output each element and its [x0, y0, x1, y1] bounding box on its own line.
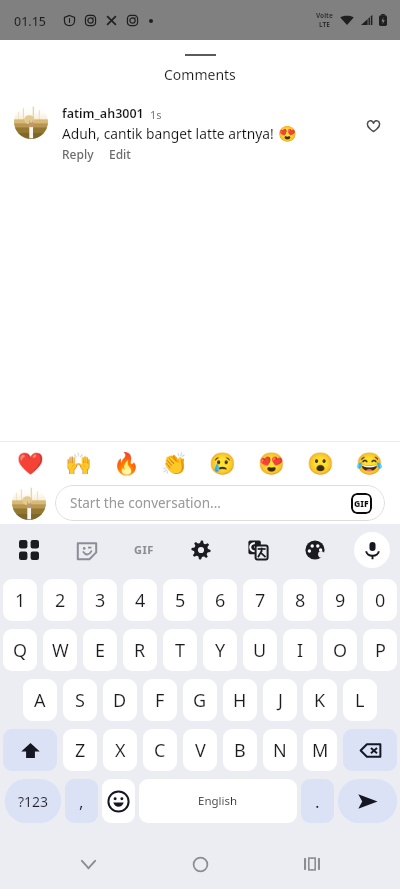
staticText: G: [193, 688, 207, 713]
staticText: Q: [13, 638, 28, 663]
button[interactable]: W: [43, 629, 77, 671]
staticText: ,: [79, 790, 84, 813]
button[interactable]: H: [223, 679, 257, 721]
button[interactable]: 2: [43, 579, 77, 621]
button[interactable]: React 😂: [345, 445, 394, 481]
staticText: Y: [215, 638, 226, 663]
button[interactable]: Voice input: [343, 524, 400, 575]
staticText: Z: [75, 738, 86, 763]
staticText: X: [115, 738, 126, 763]
staticText: M: [312, 738, 329, 763]
staticText: I: [297, 638, 304, 663]
button[interactable]: Backspace: [343, 729, 397, 771]
button[interactable]: D: [103, 679, 137, 721]
staticText: LTE: [319, 20, 330, 29]
button[interactable]: E: [83, 629, 117, 671]
button[interactable]: 6: [203, 579, 237, 621]
staticText: Aduh, cantik banget latte artnya!: [62, 124, 274, 143]
staticText: 😮: [307, 451, 334, 476]
button[interactable]: Send: [338, 779, 397, 823]
staticText: 😢: [209, 451, 236, 476]
staticText: 🔥: [113, 451, 140, 476]
staticText: W: [52, 638, 69, 663]
button[interactable]: Recent apps: [288, 840, 336, 888]
button[interactable]: GIF: [115, 524, 172, 575]
button[interactable]: M: [303, 729, 337, 771]
button[interactable]: Emoji: [102, 779, 135, 823]
button[interactable]: Q: [3, 629, 37, 671]
button[interactable]: U: [243, 629, 277, 671]
button[interactable]: React 😍: [247, 445, 296, 481]
button[interactable]: fatim_ah3001: [0, 105, 400, 162]
button[interactable]: Y: [203, 629, 237, 671]
button[interactable]: 3: [83, 579, 117, 621]
button[interactable]: 4: [123, 579, 157, 621]
button[interactable]: React 🔥: [102, 445, 150, 481]
button[interactable]: Like: [361, 114, 385, 138]
staticText: B: [234, 738, 246, 763]
button[interactable]: K: [303, 679, 337, 721]
button[interactable]: 0: [363, 579, 397, 621]
button[interactable]: GIF: [351, 493, 372, 514]
button[interactable]: Z: [63, 729, 97, 771]
staticText: GIF: [134, 542, 154, 557]
button[interactable]: 7: [243, 579, 277, 621]
staticText: 👏: [161, 451, 188, 476]
button[interactable]: R: [123, 629, 157, 671]
button[interactable]: 1: [3, 579, 37, 621]
button[interactable]: React 👏: [150, 445, 198, 481]
button[interactable]: React 😢: [198, 445, 247, 481]
button[interactable]: ,: [65, 779, 98, 823]
button[interactable]: React 🙌: [54, 445, 102, 481]
button[interactable]: Start the conversation...: [55, 485, 385, 521]
staticText: 0: [375, 588, 386, 613]
button[interactable]: N: [263, 729, 297, 771]
button[interactable]: Home: [176, 840, 224, 888]
button[interactable]: V: [183, 729, 217, 771]
button[interactable]: S: [63, 679, 97, 721]
button[interactable]: Settings: [172, 524, 229, 575]
button[interactable]: Symbols: [0, 524, 58, 575]
staticText: D: [113, 688, 127, 713]
staticText: ?123: [18, 792, 49, 811]
button[interactable]: A: [23, 679, 57, 721]
button[interactable]: I: [283, 629, 317, 671]
button[interactable]: P: [363, 629, 397, 671]
button[interactable]: J: [263, 679, 297, 721]
button[interactable]: Reply: [62, 146, 94, 162]
staticText: ❤️: [17, 451, 44, 476]
button[interactable]: Edit: [109, 146, 131, 162]
button[interactable]: L: [343, 679, 377, 721]
button[interactable]: ?123: [5, 779, 61, 823]
button[interactable]: 9: [323, 579, 357, 621]
button[interactable]: F: [143, 679, 177, 721]
staticText: English: [198, 793, 238, 809]
button[interactable]: T: [163, 629, 197, 671]
staticText: N: [273, 738, 287, 763]
button[interactable]: English: [139, 779, 297, 823]
button[interactable]: Translate: [229, 524, 286, 575]
staticText: 5: [175, 588, 186, 613]
button[interactable]: X: [103, 729, 137, 771]
button[interactable]: B: [223, 729, 257, 771]
button[interactable]: Back: [64, 840, 112, 888]
button[interactable]: 8: [283, 579, 317, 621]
staticText: A: [34, 688, 46, 713]
button[interactable]: 5: [163, 579, 197, 621]
staticText: 01.15: [14, 13, 47, 30]
staticText: Comments: [164, 65, 236, 84]
button[interactable]: React ❤️: [6, 445, 54, 481]
staticText: 😍: [258, 451, 285, 476]
staticText: J: [278, 688, 283, 713]
button[interactable]: G: [183, 679, 217, 721]
button[interactable]: Shift: [3, 729, 57, 771]
button[interactable]: C: [143, 729, 177, 771]
staticText: .: [315, 790, 320, 813]
staticText: L: [355, 688, 365, 713]
staticText: Start the conversation...: [70, 494, 351, 512]
button[interactable]: .: [301, 779, 334, 823]
button[interactable]: Stickers: [58, 524, 115, 575]
button[interactable]: O: [323, 629, 357, 671]
button[interactable]: Themes: [286, 524, 343, 575]
button[interactable]: React 😮: [296, 445, 345, 481]
